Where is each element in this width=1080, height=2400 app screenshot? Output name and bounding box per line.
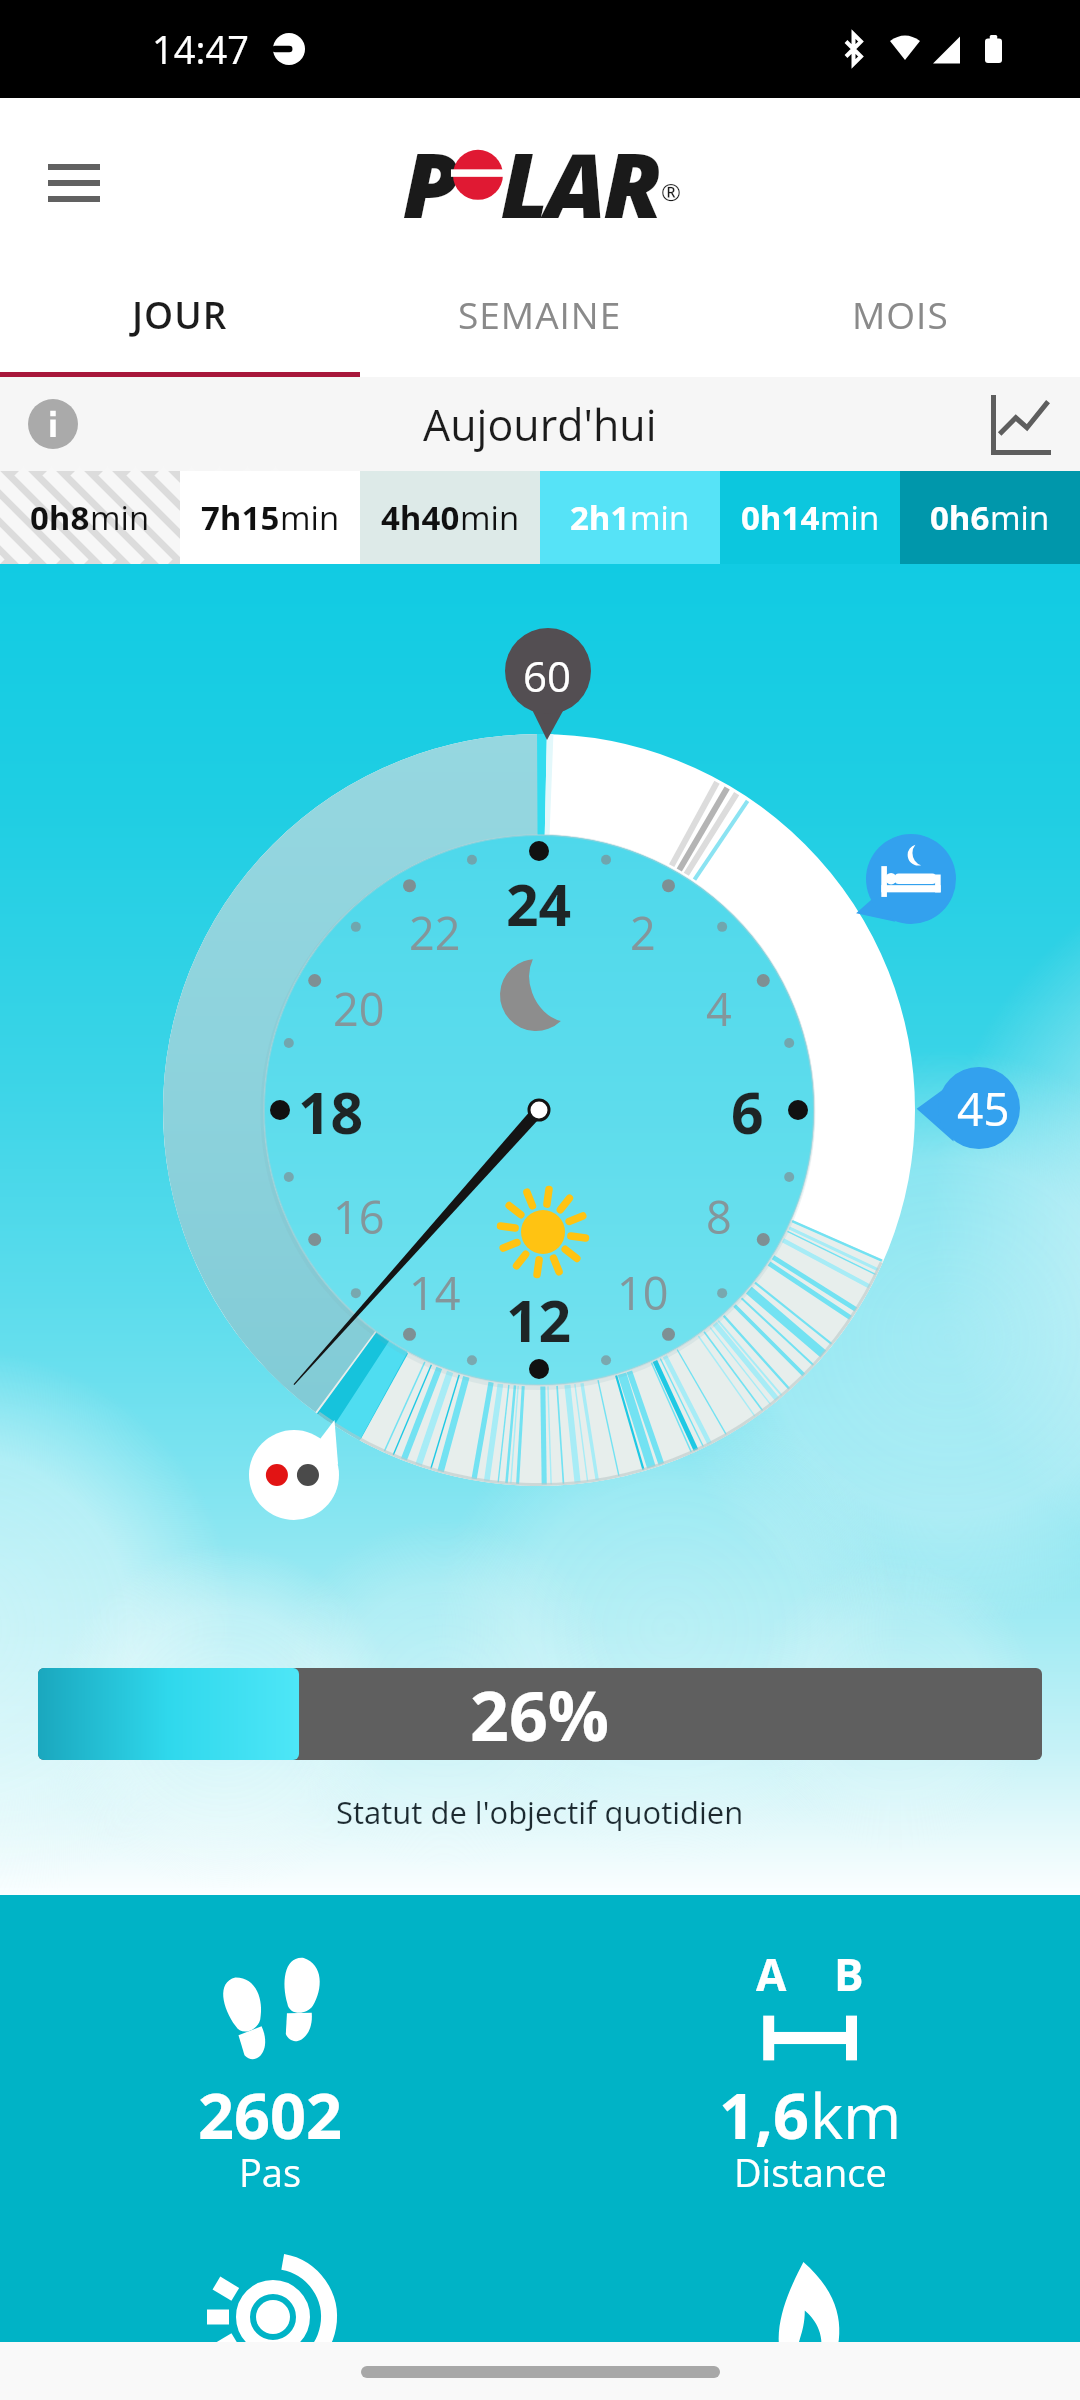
button[interactable]: 7h15 [180, 471, 360, 564]
button[interactable]: Menu [26, 135, 122, 231]
staticText: min [990, 495, 1050, 540]
staticText: Pas [239, 2146, 302, 2198]
staticText: 7h15 [201, 495, 280, 540]
staticText: 0h6 [930, 495, 990, 540]
staticText: 4 [706, 978, 732, 1039]
staticText: 24 [506, 865, 572, 943]
staticText: min [820, 495, 880, 540]
staticText: SEMAINE [458, 289, 622, 339]
button[interactable]: Chart [986, 388, 1058, 460]
staticText: 6 [731, 1073, 764, 1151]
staticText: JOUR [132, 289, 228, 339]
button[interactable]: Heart rate 45 [927, 1056, 1031, 1160]
staticText: 12 [506, 1281, 572, 1359]
staticText: 26% [470, 1668, 610, 1760]
staticText: Aujourd'hui [423, 395, 657, 454]
staticText: MOIS [852, 289, 949, 339]
staticText: 1,6 [719, 2072, 810, 2158]
staticText: ® [661, 175, 681, 208]
button[interactable]: Sleep [855, 823, 967, 935]
staticText: min [280, 495, 340, 540]
staticText: 18 [298, 1073, 364, 1151]
staticText: 22 [409, 902, 461, 963]
staticText: 0h8 [30, 495, 90, 540]
staticText: 0h14 [741, 495, 820, 540]
other: Do not disturb [273, 32, 307, 66]
button[interactable]: 0h14 [720, 471, 900, 564]
staticText: 2 [630, 902, 656, 963]
staticText: P [402, 122, 456, 218]
staticText: Statut de l'objectif quotidien [336, 1791, 744, 1833]
button[interactable]: 2h1 [540, 471, 720, 564]
staticText: 14:47 [152, 23, 249, 75]
staticText: 20 [333, 978, 385, 1039]
button[interactable]: Info [20, 391, 86, 457]
staticText: A [756, 1944, 787, 2004]
staticText: 8 [706, 1186, 732, 1247]
button[interactable]: MOIS [720, 268, 1080, 372]
staticText: LAR [500, 122, 659, 218]
staticText: 4h40 [381, 495, 460, 540]
staticText: min [90, 495, 150, 540]
button[interactable]: JOUR [0, 268, 360, 372]
staticText: km [810, 2072, 902, 2158]
staticText: min [460, 495, 520, 540]
staticText: 2h1 [570, 495, 630, 540]
staticText: 14 [409, 1262, 461, 1323]
button[interactable]: Calories [540, 2262, 1080, 2372]
button[interactable]: A [540, 1895, 1080, 2225]
staticText: 16 [333, 1186, 385, 1247]
staticText: 2602 [198, 2072, 343, 2158]
staticText: 60 [523, 647, 572, 704]
staticText: Distance [734, 2146, 887, 2198]
button[interactable]: 26% [38, 1668, 1042, 1760]
button[interactable]: 0h6 [900, 471, 1080, 564]
button[interactable]: 60 [488, 611, 608, 741]
staticText: min [630, 495, 690, 540]
staticText: B [834, 1944, 864, 2004]
button[interactable]: 0h8 [0, 471, 180, 564]
button[interactable]: 4h40 [360, 471, 540, 564]
staticText: 45 [957, 1077, 1010, 1140]
button[interactable]: 2602 [0, 1895, 540, 2225]
button[interactable]: Activity [0, 2250, 540, 2360]
button[interactable]: Training sessions [238, 1419, 350, 1531]
staticText: 10 [617, 1262, 669, 1323]
button[interactable]: SEMAINE [360, 268, 720, 372]
